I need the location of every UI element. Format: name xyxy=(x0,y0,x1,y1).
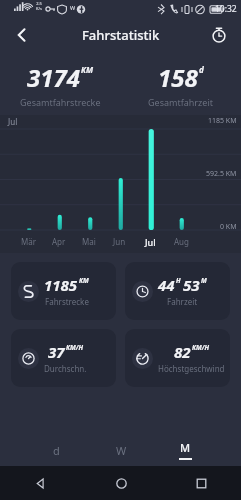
staticText: KM xyxy=(81,64,93,75)
staticText: 53 xyxy=(183,275,200,295)
button[interactable]: Back xyxy=(6,19,38,51)
staticText: Durchschn. xyxy=(44,363,87,374)
staticText: Gesamtfahrstrecke xyxy=(20,96,101,108)
staticText: Jun xyxy=(113,236,126,247)
staticText: 3174 xyxy=(27,61,80,94)
staticText: 2.5 K/s xyxy=(36,1,42,11)
staticText: 1185 xyxy=(44,275,78,295)
staticText: Apr xyxy=(52,236,66,247)
staticText: Höchstgeschwindi xyxy=(158,363,226,374)
button[interactable]: Recents xyxy=(161,466,241,500)
button[interactable]: Home xyxy=(81,466,161,500)
staticText: 158 xyxy=(158,61,198,94)
staticText: Mai xyxy=(82,236,96,247)
staticText: KM xyxy=(79,276,89,285)
button[interactable]: Back xyxy=(0,466,81,500)
staticText: Jul xyxy=(8,116,18,127)
staticText: 0 KM xyxy=(220,222,237,232)
button[interactable]: M xyxy=(153,434,217,466)
staticText: d xyxy=(199,64,204,75)
staticText: Fahrzeit xyxy=(167,296,198,307)
staticText: 1185 KM xyxy=(208,116,237,126)
button[interactable]: W xyxy=(89,434,153,466)
button[interactable]: Stopwatch xyxy=(203,19,235,51)
button[interactable]: d xyxy=(24,434,89,466)
staticText: Jul xyxy=(145,236,156,248)
button[interactable]: 44 xyxy=(125,262,230,320)
staticText: 10:32 xyxy=(215,3,237,15)
staticText: Fahrstrecke xyxy=(45,296,89,307)
staticText: Aug xyxy=(174,236,189,247)
staticText: M xyxy=(180,440,191,455)
button[interactable]: 37 xyxy=(11,329,116,387)
staticText: Fahrstatistik xyxy=(82,26,160,44)
staticText: W xyxy=(70,4,76,11)
staticText: H xyxy=(176,276,181,285)
staticText: 44 xyxy=(158,275,175,295)
staticText: M xyxy=(201,276,207,285)
staticText: d xyxy=(53,443,60,458)
staticText: KM/H xyxy=(66,343,84,352)
staticText: 82 xyxy=(174,342,191,362)
staticText: Gesamtfahrzeit xyxy=(148,96,213,108)
staticText: Mär xyxy=(21,236,37,247)
staticText: 37 xyxy=(48,342,65,362)
staticText: W xyxy=(116,443,127,458)
staticText: KM/H xyxy=(192,343,210,352)
button[interactable]: 1185 xyxy=(11,262,116,320)
staticText: 592.5 KM xyxy=(206,169,237,179)
button[interactable]: 82 xyxy=(125,329,230,387)
